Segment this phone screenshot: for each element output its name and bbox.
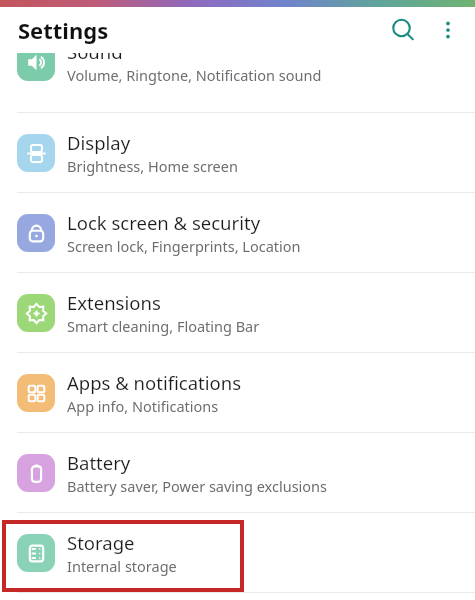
staticText: App info, Notifications — [67, 396, 219, 416]
staticText: Lock screen & security — [67, 210, 261, 235]
button[interactable]: Storage — [0, 513, 475, 592]
staticText: Apps & notifications — [67, 370, 242, 395]
staticText: Settings — [18, 15, 109, 45]
staticText: Storage — [67, 530, 135, 555]
button[interactable]: Search — [380, 7, 426, 53]
staticText: Battery — [67, 450, 131, 475]
staticText: Internal storage — [67, 556, 177, 576]
staticText: Volume, Ringtone, Notification sound — [67, 65, 322, 85]
button[interactable]: More options — [426, 8, 470, 52]
button[interactable]: Extensions — [0, 273, 475, 352]
staticText: Smart cleaning, Floating Bar — [67, 316, 260, 336]
button[interactable]: Battery — [0, 433, 475, 512]
staticText: Display — [67, 130, 131, 155]
button[interactable]: Sound — [0, 53, 475, 91]
button[interactable]: Display — [0, 113, 475, 192]
staticText: Brightness, Home screen — [67, 156, 238, 176]
staticText: Screen lock, Fingerprints, Location — [67, 236, 301, 256]
staticText: Extensions — [67, 290, 161, 315]
other: Storage highlighted — [0, 0, 475, 600]
staticText: Sound — [67, 53, 123, 64]
button[interactable]: Lock screen & security — [0, 193, 475, 272]
staticText: Battery saver, Power saving exclusions — [67, 476, 328, 496]
button[interactable]: Apps & notifications — [0, 353, 475, 432]
